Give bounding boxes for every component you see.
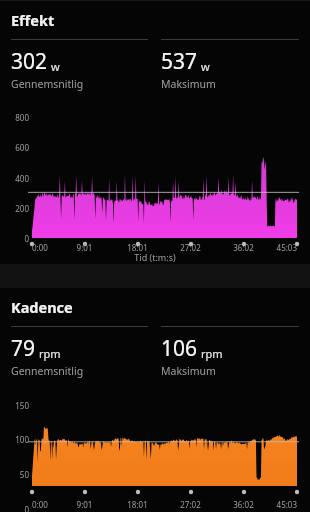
staticText: 302 [11,47,48,76]
staticText: w [201,59,210,74]
button[interactable]: Kadence [0,288,310,512]
staticText: 0 [11,233,29,244]
staticText: 106 [161,334,198,363]
staticText: 200 [11,203,29,214]
staticText: 600 [11,142,29,153]
staticText: 36:02 [217,242,270,253]
staticText: 150 [11,400,29,411]
staticText: 79 [11,334,36,363]
other: Activity metrics [0,0,310,512]
staticText: 537 [161,47,198,76]
staticText: 18:01 [111,499,164,510]
staticText: Effekt [11,10,55,30]
staticText: 27:02 [164,242,217,253]
staticText: 50 [11,469,29,480]
staticText: Gennemsnitlig [11,364,84,378]
staticText: w [51,59,60,74]
staticText: 18:01 [111,242,164,253]
staticText: Maksimum [161,364,216,378]
staticText: 400 [11,173,29,184]
staticText: Kadence [11,297,73,317]
staticText: rpm [201,346,223,361]
staticText: 9:01 [58,242,111,253]
staticText: 0:00 [32,242,58,253]
staticText: Maksimum [161,77,216,91]
staticText: 45:03 [270,242,297,253]
staticText: Gennemsnitlig [11,77,84,91]
staticText: 0:00 [32,499,58,510]
staticText: 36:02 [217,499,270,510]
button[interactable]: Effekt [0,1,310,264]
staticText: 100 [11,434,29,445]
staticText: 0 [11,504,29,512]
staticText: 45:03 [270,499,297,510]
staticText: Tid (t:m:s) [11,251,299,263]
staticText: rpm [39,346,61,361]
staticText: 800 [11,112,29,123]
staticText: 9:01 [58,499,111,510]
staticText: 27:02 [164,499,217,510]
